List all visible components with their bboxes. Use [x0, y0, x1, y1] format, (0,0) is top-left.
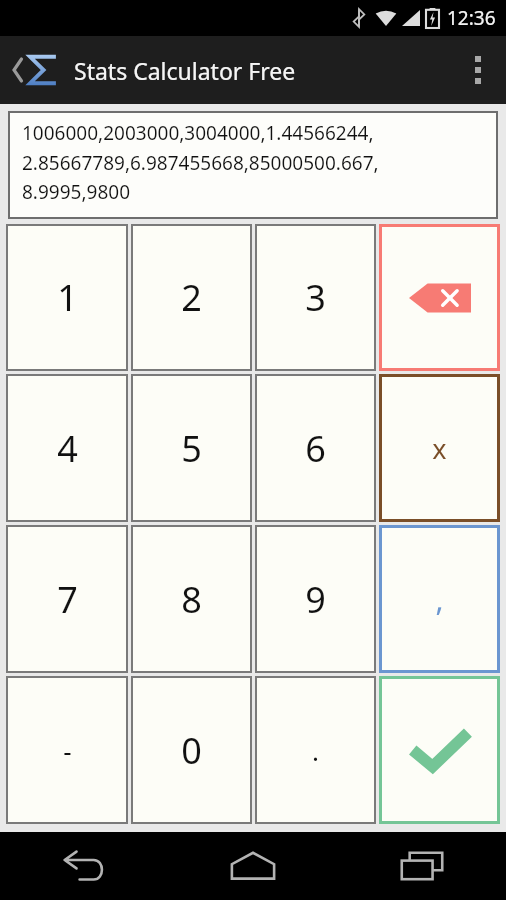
staticText: x — [432, 430, 447, 467]
button[interactable]: Confirm — [379, 676, 500, 824]
button[interactable]: 9 — [255, 525, 376, 673]
button[interactable]: , — [379, 525, 500, 673]
staticText: 8 — [181, 575, 202, 624]
button[interactable]: 6 — [255, 374, 376, 522]
staticText: Stats Calculator Free — [74, 55, 296, 86]
staticText: 12:36 — [447, 5, 496, 31]
staticText: - — [63, 733, 72, 768]
staticText: 9 — [305, 575, 326, 624]
button[interactable]: Back — [0, 832, 168, 900]
button[interactable]: Recent apps — [337, 832, 506, 900]
button[interactable]: x — [379, 374, 500, 522]
button[interactable]: 2 — [131, 224, 252, 371]
button[interactable]: Up — [8, 43, 62, 97]
button[interactable]: Backspace — [379, 224, 500, 371]
staticText: 2 — [181, 273, 202, 322]
staticText: 1 — [57, 273, 78, 322]
staticText: 0 — [181, 726, 202, 775]
staticText: , — [435, 579, 444, 620]
button[interactable]: 0 — [131, 676, 252, 824]
button[interactable]: 1006000,2003000,3004000,1.44566244, 2.85… — [8, 111, 498, 219]
button[interactable]: 5 — [131, 374, 252, 522]
button[interactable]: . — [255, 676, 376, 824]
button[interactable]: 3 — [255, 224, 376, 371]
button[interactable]: More options — [450, 36, 506, 104]
staticText: 4 — [57, 424, 78, 473]
staticText: 6 — [305, 424, 326, 473]
button[interactable]: 7 — [6, 525, 128, 673]
staticText: 5 — [181, 424, 202, 473]
button[interactable]: 4 — [6, 374, 128, 522]
button[interactable]: Home — [168, 832, 337, 900]
staticText: 7 — [57, 575, 78, 624]
staticText: . — [312, 733, 319, 768]
staticText: 3 — [305, 273, 326, 322]
button[interactable]: - — [6, 676, 128, 824]
button[interactable]: 8 — [131, 525, 252, 673]
staticText: 1006000,2003000,3004000,1.44566244, 2.85… — [22, 120, 379, 204]
button[interactable]: 1 — [6, 224, 128, 371]
